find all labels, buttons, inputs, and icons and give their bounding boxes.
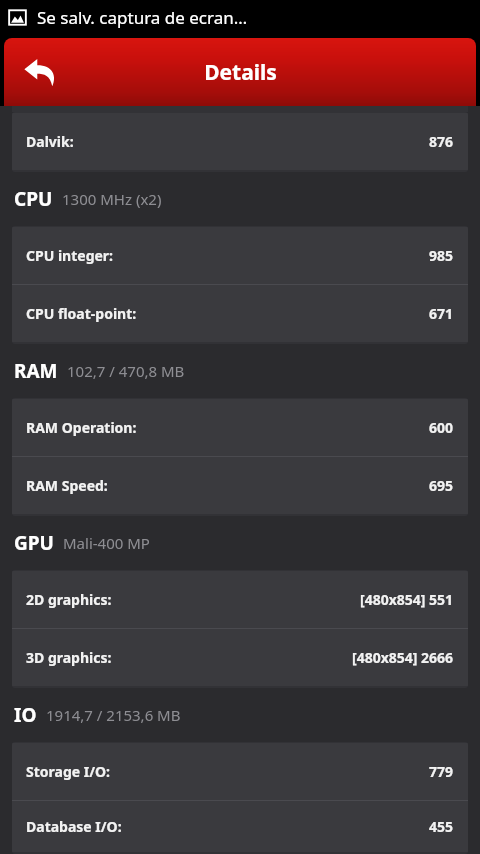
button[interactable]: RAM Speed: bbox=[12, 457, 468, 514]
staticText: Database I/O: bbox=[26, 817, 122, 836]
staticText: 1300 MHz (x2) bbox=[62, 189, 162, 209]
staticText: 2D graphics: bbox=[26, 590, 112, 609]
button[interactable]: Back bbox=[12, 44, 68, 100]
staticText: 876 bbox=[429, 132, 454, 151]
staticText: Dalvik: bbox=[26, 132, 74, 151]
staticText: RAM bbox=[14, 358, 58, 384]
button[interactable]: 2D graphics: bbox=[12, 571, 468, 628]
staticText: 779 bbox=[429, 762, 454, 781]
staticText: CPU integer: bbox=[26, 246, 114, 265]
staticText: [480x854] 2666 bbox=[352, 648, 454, 667]
staticText: 102,7 / 470,8 MB bbox=[67, 361, 185, 381]
staticText: Se salv. captura de ecran… bbox=[37, 6, 248, 29]
staticText: GPU bbox=[14, 530, 54, 556]
staticText: CPU bbox=[14, 186, 53, 212]
staticText: RAM Operation: bbox=[26, 418, 137, 437]
staticText: 1914,7 / 2153,6 MB bbox=[46, 705, 181, 725]
button[interactable]: 3D graphics: bbox=[12, 629, 468, 686]
button[interactable]: Dalvik: bbox=[12, 113, 468, 170]
staticText: 3D graphics: bbox=[26, 648, 112, 667]
staticText: 695 bbox=[429, 476, 454, 495]
button[interactable]: Storage I/O: bbox=[12, 743, 468, 800]
button[interactable]: Database I/O: bbox=[12, 801, 468, 852]
staticText: CPU float-point: bbox=[26, 304, 137, 323]
staticText: IO bbox=[14, 702, 37, 728]
staticText: 671 bbox=[429, 304, 454, 323]
staticText: 985 bbox=[429, 246, 454, 265]
staticText: [480x854] 551 bbox=[360, 590, 454, 609]
button[interactable]: RAM Operation: bbox=[12, 399, 468, 456]
staticText: 455 bbox=[429, 817, 454, 836]
staticText: RAM Speed: bbox=[26, 476, 108, 495]
staticText: 600 bbox=[429, 418, 454, 437]
button[interactable]: CPU float-point: bbox=[12, 285, 468, 342]
staticText: Mali-400 MP bbox=[63, 533, 150, 553]
staticText: Details bbox=[204, 58, 277, 87]
staticText: Storage I/O: bbox=[26, 762, 111, 781]
button[interactable]: CPU integer: bbox=[12, 227, 468, 284]
